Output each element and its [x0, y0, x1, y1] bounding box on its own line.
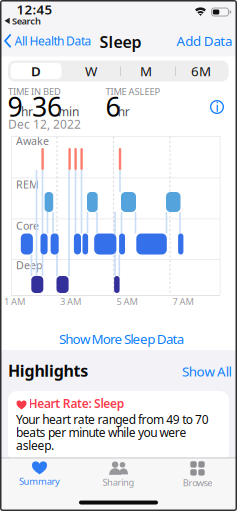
button[interactable]: W — [64, 60, 118, 81]
staticText: hr — [21, 104, 33, 119]
staticText: Awake — [16, 134, 49, 148]
button[interactable]: Browse — [158, 459, 237, 501]
staticText: 9 — [7, 89, 22, 124]
staticText: Core — [16, 218, 39, 233]
staticText: Highlights — [8, 360, 88, 381]
staticText: W — [85, 62, 97, 80]
button[interactable]: 6M — [174, 60, 228, 81]
button[interactable]: Summary — [0, 459, 79, 501]
staticText: 12:45 — [16, 0, 52, 18]
button[interactable]: Heart Rate: Sleep — [8, 391, 229, 462]
staticText: i — [215, 99, 218, 115]
staticText: Heart Rate: Sleep — [28, 395, 125, 411]
staticText: D — [31, 62, 41, 80]
button[interactable]: About Sleep — [210, 100, 224, 114]
button[interactable]: Sharing — [79, 459, 158, 501]
staticText: hr — [118, 104, 130, 119]
staticText: Deep — [16, 258, 43, 272]
staticText: 6 — [105, 89, 120, 124]
staticText: 7 AM — [172, 295, 193, 308]
staticText: Browse — [183, 476, 212, 489]
staticText: Summary — [19, 475, 60, 487]
staticText: min — [58, 104, 79, 119]
staticText: asleep. — [16, 437, 54, 453]
staticText: TIME IN BED — [8, 85, 61, 98]
staticText: Add Data — [176, 32, 232, 50]
staticText: Sharing — [102, 476, 135, 488]
button[interactable]: All Health Data — [5, 33, 91, 49]
staticText: 5 AM — [116, 295, 137, 308]
staticText: Search — [12, 15, 41, 27]
staticText: 1 AM — [4, 295, 25, 308]
button[interactable]: D — [9, 60, 63, 81]
staticText: Dec 12, 2022 — [8, 116, 81, 132]
staticText: Show All — [182, 362, 232, 380]
staticText: Show More Sleep Data — [59, 330, 184, 348]
staticText: Sleep — [99, 31, 141, 52]
button[interactable]: M — [119, 60, 173, 81]
staticText: TIME ASLEEP — [105, 85, 160, 98]
staticText: beats per minute while you were — [16, 424, 186, 440]
staticText: All Health Data — [14, 33, 91, 49]
button[interactable]: Show All — [182, 362, 232, 380]
staticText: 3 AM — [60, 295, 81, 308]
staticText: REM — [16, 177, 39, 192]
staticText: M — [140, 62, 152, 80]
button[interactable]: Add Data — [176, 32, 232, 50]
staticText: 36 — [32, 89, 62, 124]
staticText: 6M — [191, 62, 211, 80]
staticText: Your heart rate ranged from 49 to 70 — [16, 411, 209, 427]
button[interactable]: Show More Sleep Data — [59, 330, 184, 348]
